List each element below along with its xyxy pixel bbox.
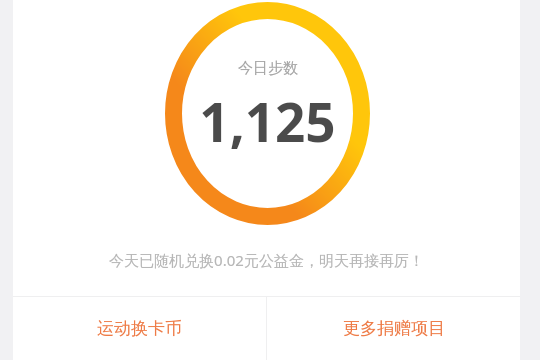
staticText: 今天已随机兑换0.02元公益金，明天再接再厉！ xyxy=(109,250,424,270)
staticText: 运动换卡币 xyxy=(97,318,182,339)
staticText: 1,125 xyxy=(199,85,336,157)
staticText: 今日步数 xyxy=(238,59,298,78)
staticText: 更多捐赠项目 xyxy=(343,318,445,339)
button[interactable]: 更多捐赠项目 xyxy=(267,297,520,360)
button[interactable]: 运动换卡币 xyxy=(13,297,266,360)
